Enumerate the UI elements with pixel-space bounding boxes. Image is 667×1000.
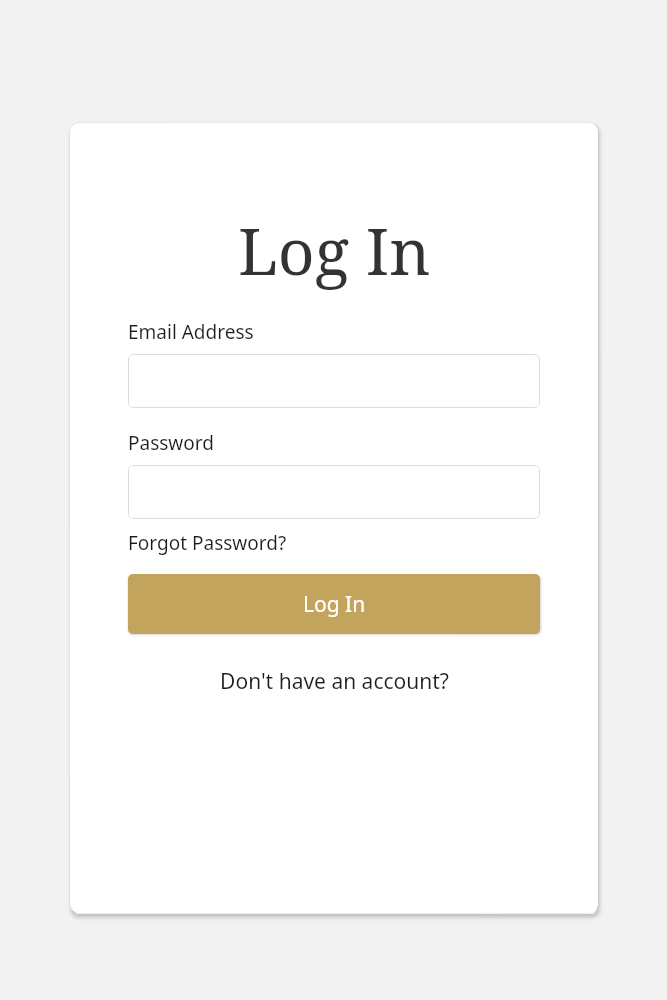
button[interactable]: Email Address input — [128, 354, 540, 408]
staticText: Email Address — [128, 319, 254, 345]
button[interactable]: Don't have an account? — [128, 667, 540, 696]
staticText: Log In — [303, 590, 366, 619]
button[interactable]: Forgot Password? — [128, 530, 287, 556]
staticText: Don't have an account? — [220, 667, 449, 696]
staticText: Log In — [238, 207, 431, 294]
button[interactable]: Log In — [128, 574, 540, 634]
staticText: Forgot Password? — [128, 530, 287, 556]
staticText: Password — [128, 430, 214, 456]
button[interactable]: Password input — [128, 465, 540, 519]
